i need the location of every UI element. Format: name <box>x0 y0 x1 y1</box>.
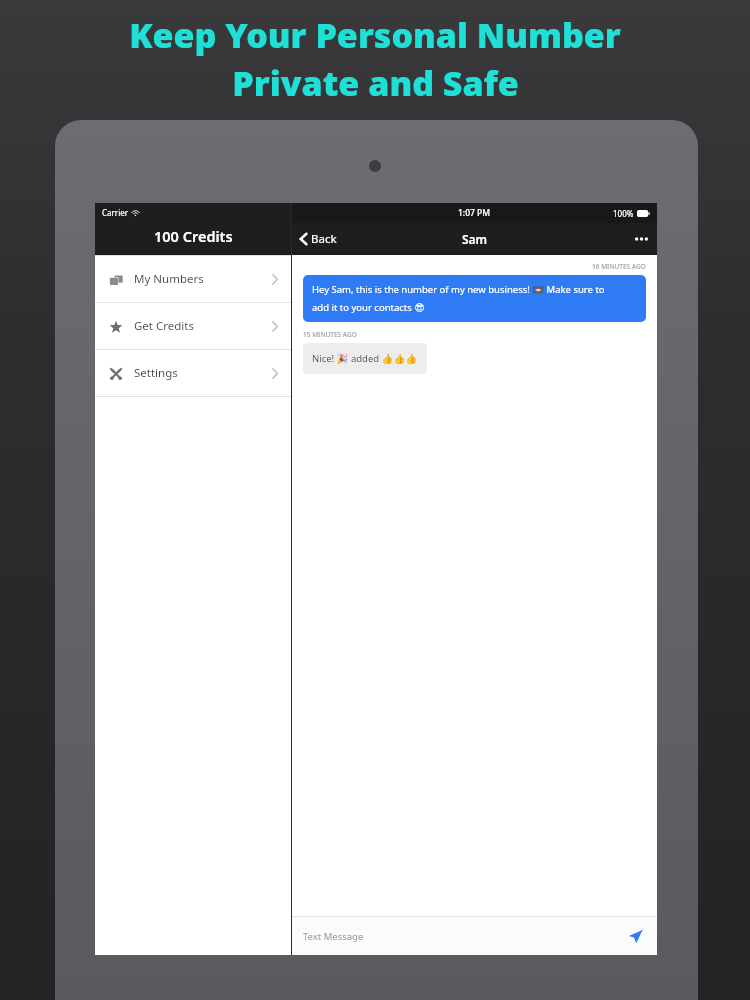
button[interactable]: Hey Sam, this is the number of my new bu… <box>303 275 646 322</box>
staticText: My Numbers <box>134 271 204 287</box>
staticText: Text Message <box>303 930 364 943</box>
button[interactable]: Back <box>292 226 345 252</box>
button[interactable]: Send <box>625 926 646 947</box>
staticText: Back <box>311 231 337 247</box>
staticText: 1:07 PM <box>458 207 491 219</box>
staticText: Sam <box>462 231 488 247</box>
staticText: 100 Credits <box>154 226 233 246</box>
button[interactable]: My Numbers <box>95 255 291 302</box>
button[interactable]: Nice! 🎉 added 👍👍👍 <box>303 343 427 374</box>
button[interactable]: Get Credits <box>95 302 291 349</box>
staticText: Keep Your Personal Number <box>129 12 621 58</box>
button[interactable]: Text Message <box>292 917 657 955</box>
staticText: 15 MINUTES AGO <box>303 330 357 339</box>
staticText: Carrier <box>102 207 129 218</box>
staticText: Nice! 🎉 added 👍👍👍 <box>312 352 418 365</box>
staticText: Hey Sam, this is the number of my new bu… <box>312 283 605 296</box>
staticText: 100% <box>613 208 634 219</box>
staticText: Get Credits <box>134 318 194 334</box>
staticText: Settings <box>134 365 178 381</box>
staticText: Private and Safe <box>232 60 519 106</box>
button[interactable]: Settings <box>95 349 291 396</box>
button[interactable]: More options <box>626 229 657 249</box>
staticText: add it to your contacts 😎 <box>312 301 425 314</box>
staticText: 16 MINUTES AGO <box>592 262 646 271</box>
